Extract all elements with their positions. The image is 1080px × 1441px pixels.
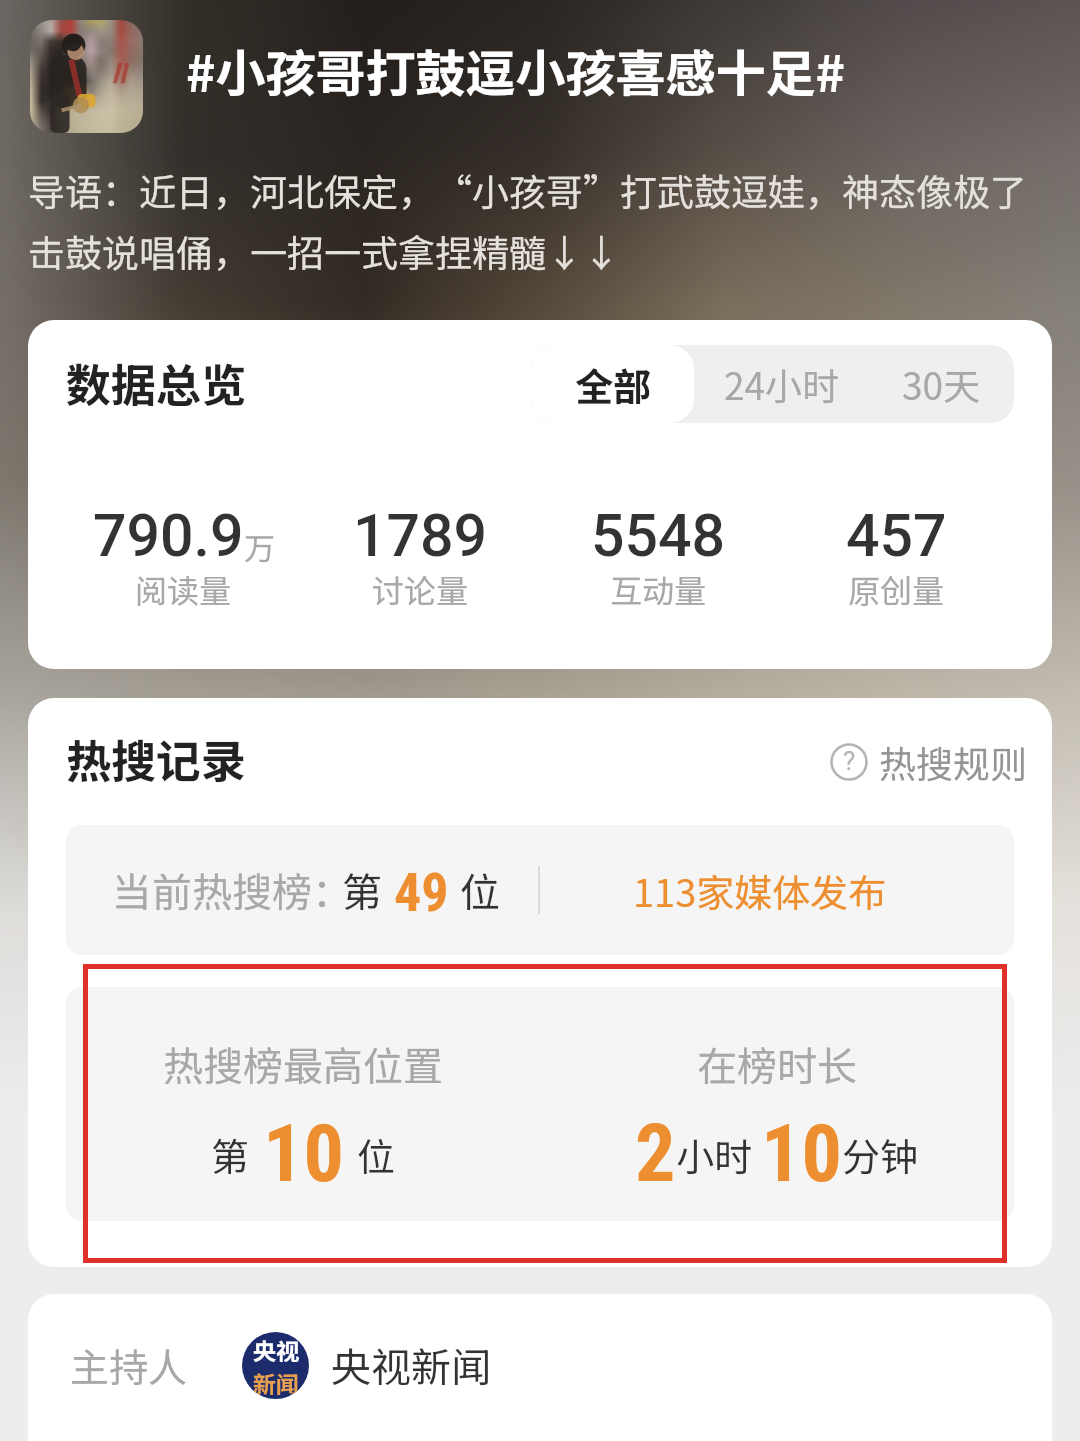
staticText: 24小时 [724,357,840,411]
staticText: 原创量 [848,566,945,612]
button[interactable]: 全部 [532,345,694,423]
staticText: 互动量 [610,566,707,612]
button[interactable]: 热搜规则 [830,734,1027,790]
staticText: 10 [761,1107,842,1201]
staticText: 央视新闻 [331,1336,491,1394]
staticText: 新闻 [253,1366,299,1399]
staticText: 1789 [353,501,488,570]
staticText: 分钟 [842,1127,919,1182]
button[interactable]: 主持人 [70,1326,491,1404]
staticText: 当前热搜榜： [112,861,352,919]
staticText: 主持人 [70,1337,188,1393]
staticText: 第 [342,861,382,919]
staticText: 热搜规则 [879,735,1027,789]
staticText: #小孩哥打鼓逗小孩喜感十足# [186,34,845,106]
staticText: ? [843,746,856,776]
staticText: 万 [244,524,275,569]
staticText: 5548 [591,501,726,570]
staticText: 阅读量 [135,566,232,612]
staticText: 热搜榜最高位置 [163,1035,443,1093]
staticText: 30天 [902,357,981,411]
staticText: 位 [357,1127,396,1182]
staticText: 2 [635,1107,676,1201]
staticText: 讨论量 [372,566,469,612]
staticText: 790.9 [93,501,244,570]
staticText: 在榜时长 [697,1035,857,1093]
staticText: 113家媒体发布 [633,863,887,918]
button[interactable]: 24小时 [694,345,869,423]
staticText: 第 [211,1127,250,1182]
staticText: 49 [394,861,449,924]
staticText: 热搜记录 [66,726,247,791]
staticText: 10 [263,1107,344,1201]
button[interactable]: 当前热搜榜： [66,825,1014,955]
other: 热搜规则 [830,743,868,781]
staticText: 导语：近日，河北保定，“小孩哥”打武鼓逗娃，神态像极了击鼓说唱俑，一招一式拿捏精… [28,163,1052,278]
staticText: 457 [846,501,947,570]
staticText: 数据总览 [66,350,247,415]
staticText: 央视 [253,1333,299,1366]
staticText: 位 [460,861,500,919]
staticText: 全部 [575,357,652,412]
staticText: 小时 [676,1127,753,1182]
button[interactable]: 30天 [869,345,1014,423]
